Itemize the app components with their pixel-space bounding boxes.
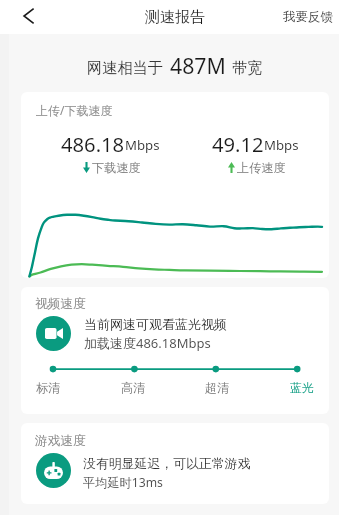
staticText: 上传速度 [237,160,286,175]
staticText: 超清 [205,380,229,395]
staticText: 49.12 [212,130,264,158]
staticText: 当前网速可观看蓝光视频 [84,316,227,332]
staticText: 下载速度 [92,160,141,175]
button[interactable]: Back [12,0,44,32]
staticText: 测速报告 [145,8,205,27]
button[interactable]: 超清 [205,380,229,395]
staticText: 加载速度486.18Mbps [84,334,211,352]
button[interactable]: 高清 [121,380,145,395]
button[interactable]: 标清 [36,380,60,395]
button[interactable]: 蓝光 [290,380,314,395]
staticText: 没有明显延迟，可以正常游戏 [83,456,251,472]
staticText: 蓝光 [290,380,314,395]
button[interactable]: 我要反馈 [277,3,339,31]
staticText: 网速相当于 [87,58,163,77]
staticText: Mbps [125,136,160,154]
staticText: 平均延时13ms [83,474,163,491]
staticText: 视频速度 [35,296,86,312]
staticText: 带宽 [232,58,263,77]
staticText: 487M [170,51,226,80]
staticText: 高清 [121,380,145,395]
staticText: 486.18 [61,130,125,158]
staticText: 我要反馈 [283,9,333,25]
staticText: 游戏速度 [35,433,86,449]
staticText: Mbps [264,136,299,154]
staticText: 上传/下载速度 [36,102,113,118]
staticText: 标清 [36,380,60,395]
